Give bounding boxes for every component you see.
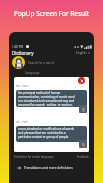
button[interactable]: Translations and more definitions bbox=[17, 163, 88, 172]
staticText: Feedback bbox=[77, 155, 89, 159]
button[interactable]: Language bbox=[25, 70, 40, 76]
staticText: 1:48 PM bbox=[12, 45, 24, 49]
staticText: Language bbox=[25, 71, 40, 75]
staticText: Definitions for similar languages bbox=[14, 155, 54, 159]
staticText: a non-standard or unofficial use of word… bbox=[18, 127, 74, 139]
button[interactable]: Close bbox=[78, 77, 85, 84]
button[interactable]: Copy bbox=[79, 140, 87, 148]
staticText: Search for a word bbox=[28, 61, 54, 65]
button[interactable]: Account bbox=[12, 56, 25, 69]
staticText: abc · noun bbox=[16, 84, 29, 88]
button[interactable]: Dictionary bbox=[12, 49, 90, 56]
staticText: Translations and more definitions bbox=[24, 166, 73, 170]
staticText: PopUp Screen For Result bbox=[14, 9, 90, 18]
staticText: Dictionary bbox=[12, 50, 34, 56]
staticText: the principal method of human communicat… bbox=[18, 91, 75, 106]
staticText: English ▾ bbox=[76, 51, 90, 55]
staticText: abc · verb bbox=[16, 120, 28, 124]
button[interactable]: Search for a word bbox=[28, 58, 91, 67]
button[interactable]: Copy bbox=[79, 105, 87, 113]
